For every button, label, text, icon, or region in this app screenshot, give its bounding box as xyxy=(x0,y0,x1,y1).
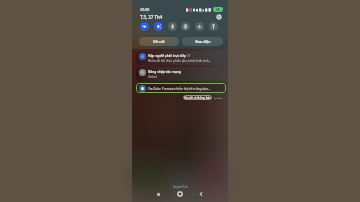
staticText: Hộp người phát trực tiếp xyxy=(148,54,186,58)
staticText: Cài đặt xyxy=(214,96,223,99)
staticText: T.5, 27 Th4 xyxy=(140,14,163,20)
staticText: YouTube Premium hiển thị trên ứng dụn... xyxy=(148,87,211,91)
button[interactable]: Back xyxy=(190,188,211,200)
staticText: Xóa tất cả thông báo xyxy=(184,96,211,100)
button[interactable]: Airplane mode xyxy=(195,22,204,31)
staticText: 20:08 xyxy=(140,7,150,12)
staticText: SaigonTech xyxy=(173,185,188,189)
button[interactable]: Hộp người phát trực tiếp xyxy=(136,51,226,65)
button[interactable]: Kết nối xyxy=(139,37,179,46)
staticText: Giao diện xyxy=(195,39,211,44)
button[interactable]: Battery saver xyxy=(181,22,190,31)
button[interactable]: Xóa tất cả thông báo xyxy=(183,95,212,100)
staticText: Đăng nhập vào mạng xyxy=(148,70,181,74)
button[interactable]: Giao diện xyxy=(182,37,223,46)
button[interactable]: Settings xyxy=(216,14,222,20)
staticText: 15' xyxy=(187,54,191,58)
button[interactable]: Sound xyxy=(154,22,163,31)
button[interactable]: Bluetooth xyxy=(168,22,177,31)
button[interactable]: Wi-Fi xyxy=(140,22,149,31)
button[interactable]: YouTube Premium hiển thị trên ứng dụn... xyxy=(136,83,226,93)
staticText: Nhấn để kết thúc phiên phụ trách hình ản… xyxy=(148,59,212,63)
staticText: 58 xyxy=(216,8,220,12)
button[interactable]: Home xyxy=(169,188,190,200)
button[interactable]: Flashlight xyxy=(209,22,218,31)
staticText: Kết nối xyxy=(153,39,165,44)
staticText: Viettel xyxy=(148,75,157,79)
button[interactable]: Đăng nhập vào mạng xyxy=(136,67,226,81)
button[interactable]: Recents xyxy=(147,188,169,200)
